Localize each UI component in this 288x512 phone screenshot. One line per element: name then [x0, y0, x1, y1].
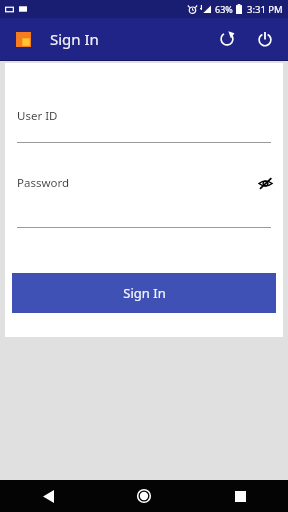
staticText: 63%	[215, 3, 233, 15]
staticText: User ID	[17, 108, 58, 124]
button[interactable]: Back	[0, 480, 96, 512]
staticText: Sign In	[123, 284, 166, 302]
button[interactable]: Home	[96, 480, 192, 512]
staticText: Password	[17, 175, 70, 191]
staticText: Sign In	[50, 29, 99, 49]
staticText: 3:31 PM	[247, 3, 283, 16]
button[interactable]: Power off	[246, 20, 284, 58]
button[interactable]: Show password	[254, 172, 276, 194]
button[interactable]: Refresh	[208, 20, 246, 58]
button[interactable]: Recent apps	[192, 480, 288, 512]
button[interactable]: Sign In	[12, 273, 276, 313]
